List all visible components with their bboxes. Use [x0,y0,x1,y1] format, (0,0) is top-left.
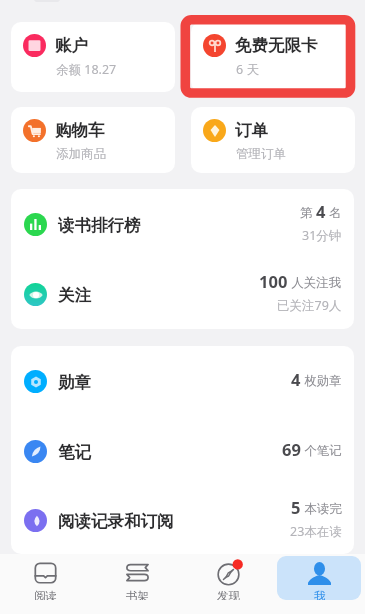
staticText: 6 天 [236,61,259,78]
staticText: 订单 [235,120,268,141]
staticText: 23本在读 [290,523,342,540]
button[interactable]: 阅读记录和订阅 [11,486,354,554]
staticText: 读书排行榜 [58,215,141,236]
staticText: 阅读记录和订阅 [58,511,174,532]
staticText: 发现 [217,589,240,600]
staticText: 购物车 [55,120,105,141]
staticText: 阅读 [34,589,57,600]
button[interactable]: 读书排行榜 [11,189,354,259]
button[interactable]: 我 [277,556,361,600]
staticText: 余额 18.27 [56,61,117,78]
staticText: 管理订单 [236,146,286,162]
button[interactable]: 勋章 [11,346,354,416]
staticText: 5 [291,496,301,518]
other: 我 [308,562,331,585]
staticText: 账户 [55,35,88,56]
staticText: 我 [314,589,326,600]
staticText: 69 [282,438,301,460]
staticText: 枚勋章 [301,372,342,389]
staticText: 本读完 [301,500,342,517]
staticText: 笔记 [58,442,91,463]
staticText: 名 [326,204,342,221]
staticText: 免费无限卡 [235,35,318,56]
staticText: 添加商品 [56,146,106,162]
button[interactable]: 阅读 [3,556,87,600]
button[interactable]: 关注 [11,259,354,329]
staticText: 已关注79人 [277,297,342,314]
other: 阅读 [34,562,57,585]
button[interactable]: 购物车 [11,107,175,173]
staticText: 个笔记 [301,442,342,459]
button[interactable]: 免费无限卡 [191,22,355,92]
staticText: 100 [259,270,288,292]
other: 发现 [217,562,240,585]
button[interactable]: 笔记 [11,416,354,486]
staticText: 4 [316,200,326,222]
staticText: 关注 [58,285,91,306]
staticText: 第 [300,204,316,221]
staticText: 4 [291,368,301,390]
other: 书架 [126,562,149,585]
staticText: 31分钟 [302,227,342,244]
staticText: 人关注我 [288,274,342,291]
staticText: 勋章 [58,372,91,393]
staticText: 书架 [126,589,149,600]
button[interactable]: 订单 [191,107,355,173]
button[interactable]: 发现 [186,556,270,600]
button[interactable]: 书架 [95,556,179,600]
button[interactable]: 账户 [11,22,175,92]
